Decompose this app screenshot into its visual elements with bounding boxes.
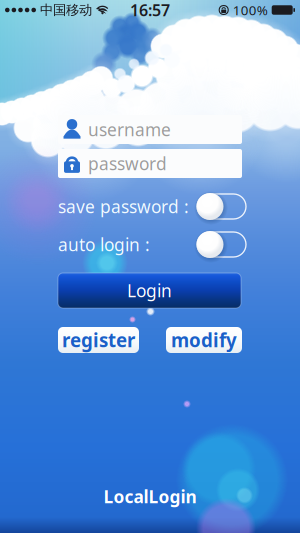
staticText: register — [62, 328, 135, 352]
staticText: LocalLogin — [103, 485, 196, 508]
staticText: Login — [127, 279, 172, 302]
staticText: auto login : — [58, 233, 150, 256]
staticText: modify — [171, 328, 237, 352]
button[interactable]: password — [58, 149, 242, 178]
staticText: 中国移动 — [40, 2, 92, 18]
button[interactable]: username — [58, 115, 242, 144]
staticText: 16:57 — [130, 0, 170, 21]
button[interactable]: modify — [166, 327, 242, 353]
button[interactable]: register — [58, 327, 139, 353]
button[interactable]: Login — [58, 273, 241, 308]
button[interactable]: auto login : — [58, 231, 242, 258]
staticText: username — [88, 118, 171, 141]
staticText: save password : — [58, 195, 189, 218]
button[interactable]: save password : — [58, 193, 242, 220]
staticText: 100% — [233, 1, 268, 19]
staticText: password — [88, 152, 167, 175]
